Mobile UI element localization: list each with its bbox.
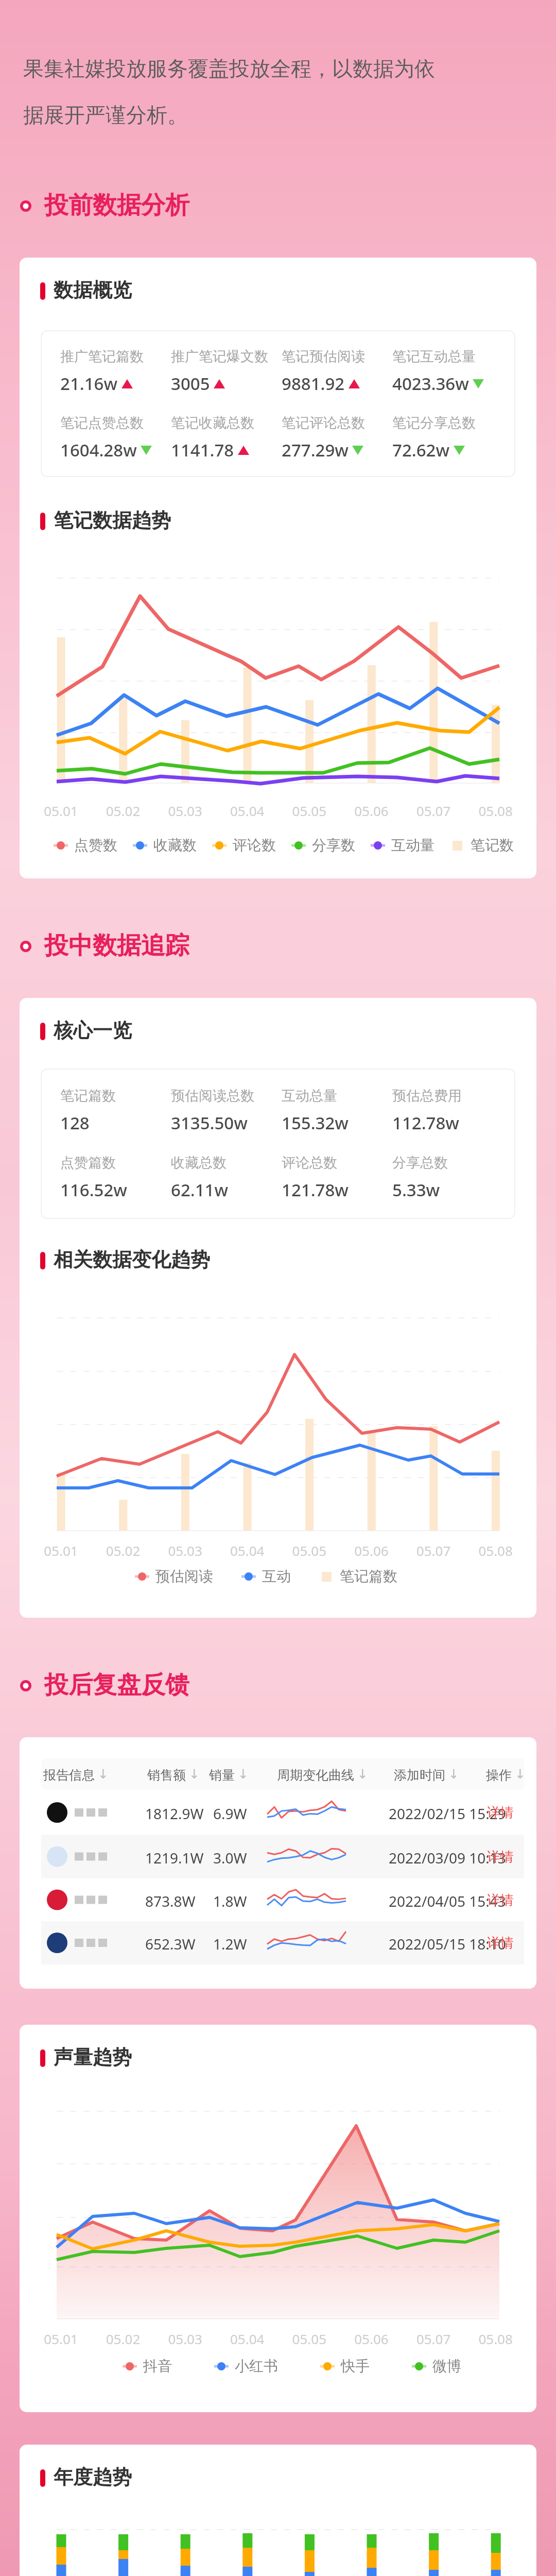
button[interactable] (0, 0, 556, 2576)
